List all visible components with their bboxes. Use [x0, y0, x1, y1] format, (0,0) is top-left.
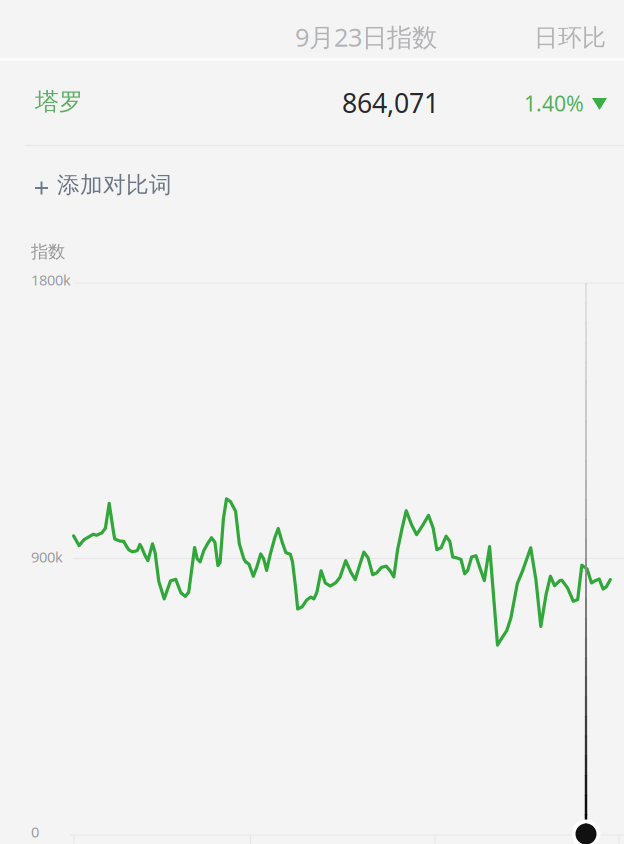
- staticText: 1.40%: [524, 89, 584, 117]
- staticText: 9月23日指数: [295, 20, 437, 54]
- staticText: 指数: [31, 241, 65, 262]
- staticText: 864,071: [342, 85, 439, 120]
- staticText: 0: [31, 822, 39, 841]
- staticText: 日环比: [534, 23, 606, 52]
- staticText: 1800k: [31, 270, 71, 289]
- button[interactable]: 添加对比词: [0, 149, 624, 221]
- staticText: 塔罗: [35, 87, 83, 116]
- staticText: 添加对比词: [57, 171, 172, 199]
- staticText: 900k: [31, 547, 63, 566]
